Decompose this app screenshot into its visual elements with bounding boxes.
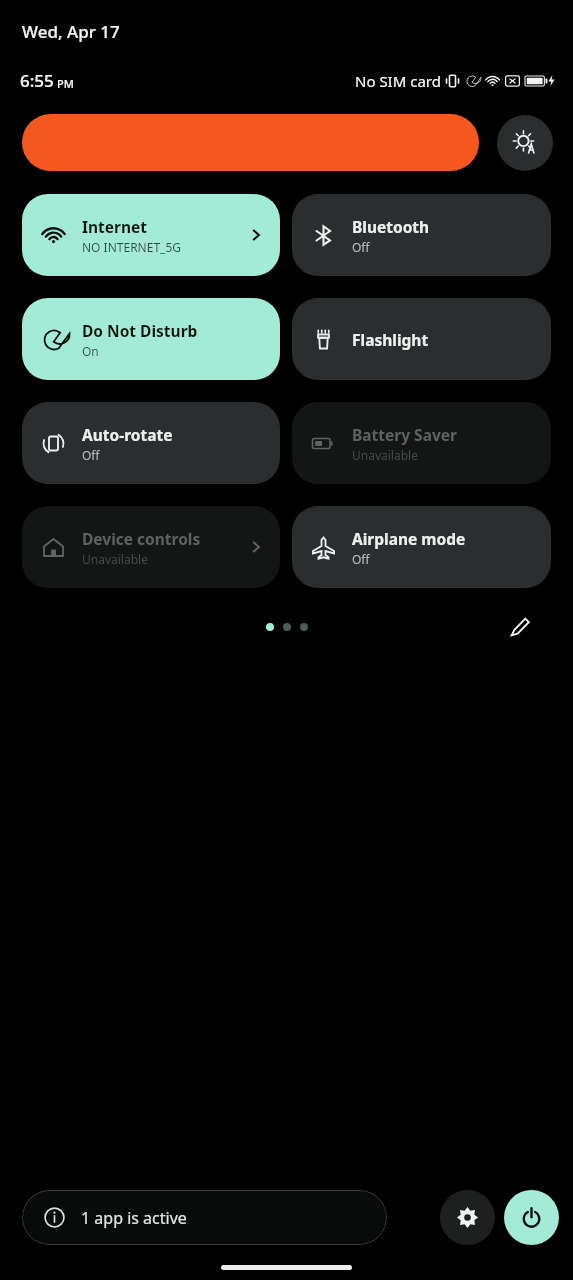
staticText: Bluetooth (352, 216, 430, 237)
button[interactable]: Settings (440, 1190, 495, 1245)
button[interactable]: Flashlight (292, 298, 551, 380)
button[interactable]: 1 app is active (22, 1190, 387, 1245)
staticText: Wed, Apr 17 (22, 20, 120, 43)
button[interactable]: Power (504, 1190, 559, 1245)
button[interactable]: Auto brightness (497, 115, 553, 171)
staticText: 1 app is active (81, 1207, 187, 1229)
staticText: Do Not Disturb (82, 320, 198, 341)
staticText: Auto-rotate (82, 424, 173, 445)
staticText: Off (352, 239, 370, 255)
staticText: Off (352, 551, 370, 567)
button[interactable]: Bluetooth (292, 194, 551, 276)
button[interactable] (22, 114, 479, 171)
staticText: Unavailable (82, 551, 148, 567)
staticText: No SIM card (355, 71, 441, 91)
staticText: Battery Saver (352, 424, 457, 445)
staticText: Internet (82, 216, 148, 237)
staticText: Airplane mode (352, 528, 466, 549)
button[interactable]: Do Not Disturb (22, 298, 280, 380)
button[interactable]: Battery Saver (292, 402, 551, 484)
staticText: Flashlight (352, 329, 429, 350)
button[interactable]: Auto-rotate (22, 402, 280, 484)
staticText: PM (57, 76, 74, 91)
staticText: Device controls (82, 528, 201, 549)
staticText: Unavailable (352, 447, 418, 463)
staticText: 6:55 (20, 69, 54, 92)
button[interactable]: Airplane mode (292, 506, 551, 588)
button[interactable]: Edit tiles (505, 612, 535, 642)
staticText: On (82, 343, 99, 359)
staticText: Off (82, 447, 100, 463)
button[interactable]: Device controls (22, 506, 280, 588)
button[interactable]: Internet (22, 194, 280, 276)
staticText: NO INTERNET_5G (82, 239, 182, 255)
